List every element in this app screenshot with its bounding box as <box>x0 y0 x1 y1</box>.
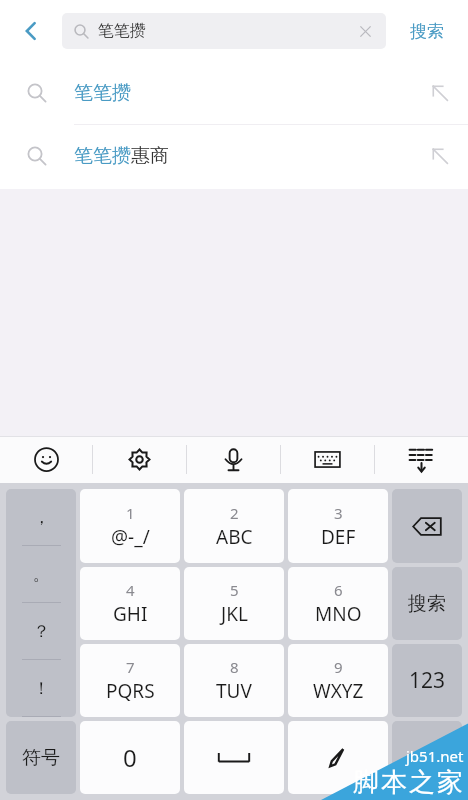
button[interactable]: 3 <box>288 489 388 563</box>
button[interactable]: 笔笔攒惠商 <box>0 125 468 187</box>
staticText: @-_/ <box>111 524 150 550</box>
button[interactable]: Clear <box>354 20 376 42</box>
staticText: 3 <box>334 503 343 523</box>
staticText: 123 <box>409 666 446 695</box>
button[interactable]: 6 <box>288 567 388 640</box>
button[interactable]: Backspace <box>392 489 462 563</box>
staticText: 7 <box>126 657 135 677</box>
button[interactable]: Back <box>0 0 62 62</box>
button[interactable]: 2 <box>184 489 284 563</box>
staticText: 0 <box>123 741 137 774</box>
staticText: 笔笔攒惠商 <box>74 144 169 168</box>
staticText: 8 <box>230 657 239 677</box>
staticText: 笔笔攒 <box>74 81 131 105</box>
button[interactable]: ， <box>6 489 76 717</box>
button[interactable]: 7 <box>80 644 180 717</box>
button[interactable]: 9 <box>288 644 388 717</box>
button[interactable]: 8 <box>184 644 284 717</box>
button[interactable]: Enter <box>392 721 462 794</box>
button[interactable]: 0 <box>80 721 180 794</box>
button[interactable]: 123 <box>392 644 462 717</box>
staticText: 搜索 <box>408 592 446 616</box>
staticText: 9 <box>334 657 343 677</box>
staticText: 5 <box>230 580 239 600</box>
staticText: PQRS <box>106 678 155 704</box>
staticText: MNO <box>315 601 362 627</box>
staticText: 搜索 <box>410 21 444 42</box>
button[interactable]: Settings <box>93 436 186 483</box>
staticText: 笔笔攒 <box>98 21 146 41</box>
button[interactable]: Fill query <box>412 125 468 187</box>
button[interactable]: 4 <box>80 567 180 640</box>
staticText: 2 <box>230 503 239 523</box>
button[interactable]: 1 <box>80 489 180 563</box>
button[interactable]: Keyboard <box>281 436 374 483</box>
staticText: TUV <box>216 678 252 704</box>
staticText: ！ <box>33 678 50 699</box>
staticText: JKL <box>221 601 248 627</box>
button[interactable]: Voice input <box>187 436 280 483</box>
staticText: ABC <box>216 524 253 550</box>
button[interactable]: Hide keyboard <box>375 436 468 483</box>
staticText: 6 <box>334 580 343 600</box>
staticText: 。 <box>33 564 50 585</box>
staticText: WXYZ <box>313 678 364 704</box>
staticText: DEF <box>321 524 356 550</box>
button[interactable]: 笔笔攒 <box>0 62 468 124</box>
staticText: GHI <box>113 601 148 627</box>
button[interactable]: Handwriting <box>288 721 388 794</box>
staticText: 脚本之家 <box>352 766 464 799</box>
staticText: 符号 <box>22 746 60 770</box>
staticText: jb51.net <box>406 746 464 766</box>
staticText: 1 <box>126 503 135 523</box>
button[interactable]: Emoji <box>0 436 92 483</box>
button[interactable]: 笔笔攒 <box>62 13 386 49</box>
button[interactable]: 搜索 <box>386 0 468 62</box>
button[interactable]: 符号 <box>6 721 76 794</box>
staticText: ， <box>33 507 50 528</box>
button[interactable]: Space <box>184 721 284 794</box>
staticText: ？ <box>33 621 50 642</box>
button[interactable]: Fill query <box>412 62 468 124</box>
staticText: 4 <box>126 580 135 600</box>
button[interactable]: 搜索 <box>392 567 462 640</box>
button[interactable]: 5 <box>184 567 284 640</box>
